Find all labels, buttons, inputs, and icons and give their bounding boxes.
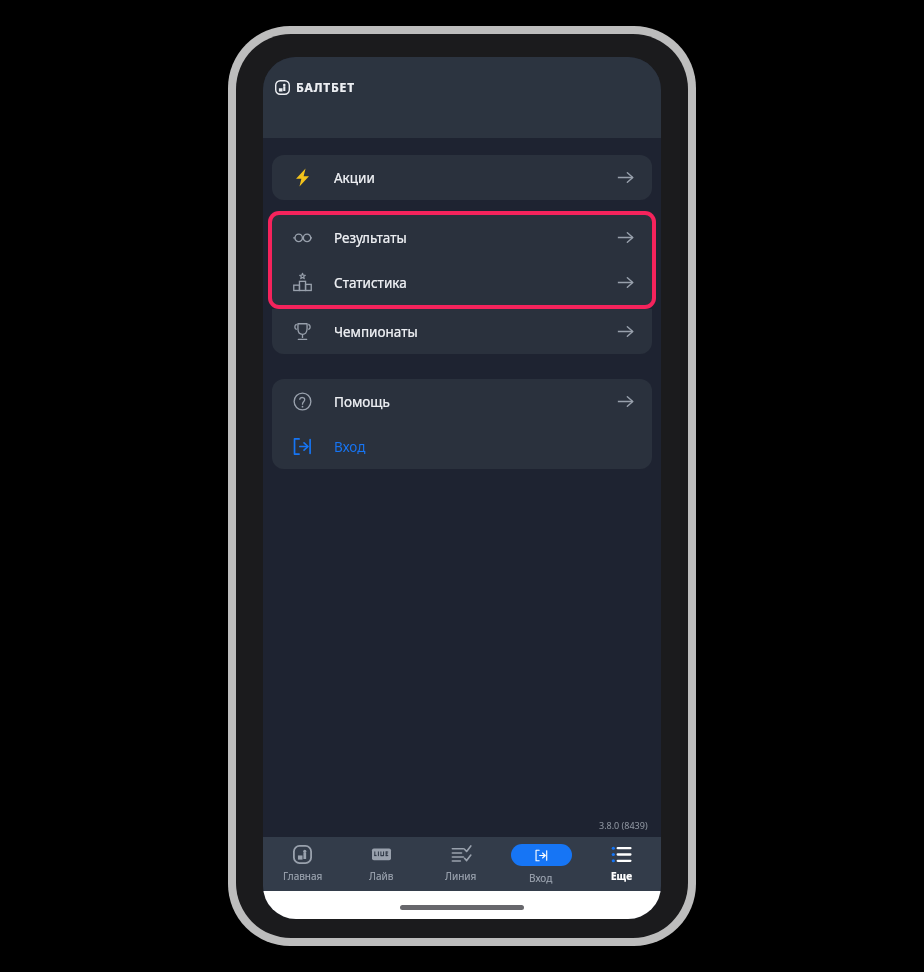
- staticText: Статистика: [334, 274, 407, 292]
- staticText: Акции: [334, 169, 375, 187]
- button[interactable]: Результаты: [272, 215, 652, 260]
- staticText: Чемпионаты: [334, 323, 418, 341]
- button[interactable]: Вход: [501, 844, 581, 885]
- button[interactable]: Линия: [421, 845, 501, 883]
- staticText: Вход: [529, 871, 553, 885]
- other: Вход: [511, 844, 572, 866]
- staticText: Линия: [445, 869, 477, 883]
- button[interactable]: Помощь: [272, 379, 652, 424]
- staticText: Вход: [334, 438, 366, 456]
- button[interactable]: Еще: [581, 845, 661, 883]
- staticText: Еще: [611, 869, 632, 883]
- button[interactable]: Статистика: [272, 260, 652, 305]
- button[interactable]: Вход: [272, 424, 652, 469]
- button[interactable]: Чемпионаты: [272, 309, 652, 354]
- staticText: Результаты: [334, 229, 407, 247]
- staticText: Главная: [283, 869, 323, 883]
- button[interactable]: Лайв: [342, 845, 421, 883]
- button[interactable]: Акции: [272, 155, 652, 200]
- staticText: Помощь: [334, 393, 390, 411]
- staticText: 3.8.0 (8439): [599, 819, 648, 831]
- staticText: БАЛТБЕТ: [296, 79, 355, 95]
- staticText: Лайв: [369, 869, 394, 883]
- button[interactable]: Главная: [263, 845, 342, 883]
